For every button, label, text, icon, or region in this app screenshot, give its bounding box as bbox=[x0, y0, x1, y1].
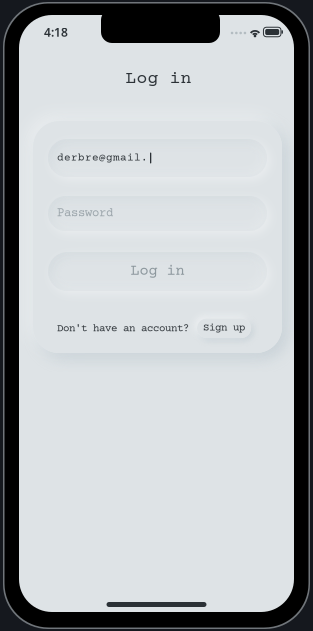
button[interactable]: Sign up bbox=[197, 318, 251, 338]
staticText: Log in bbox=[130, 263, 184, 280]
staticText: Sign up bbox=[203, 322, 245, 334]
staticText: Don't have an account? bbox=[57, 323, 189, 335]
staticText: Password bbox=[57, 207, 113, 220]
button[interactable]: Log in bbox=[48, 252, 267, 291]
staticText: Log in bbox=[125, 69, 191, 89]
staticText: 4:18 bbox=[44, 24, 68, 40]
staticText: derbre@gmail. bbox=[57, 152, 148, 164]
